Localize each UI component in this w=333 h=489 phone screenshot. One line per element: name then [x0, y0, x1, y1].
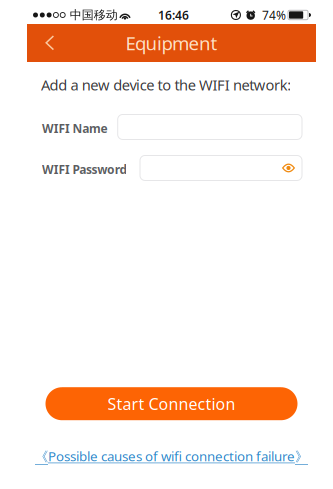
staticText: WIFI Name: [42, 120, 108, 136]
button[interactable]: 《Possible causes of wifi connection fail…: [35, 447, 308, 465]
staticText: 16:46: [158, 7, 189, 23]
button[interactable]: Start Connection: [45, 387, 297, 420]
button[interactable]: WIFI Password: [140, 155, 302, 180]
staticText: WIFI Password: [42, 161, 127, 177]
button[interactable]: WIFI Name: [118, 114, 302, 139]
staticText: 《Possible causes of wifi connection fail…: [35, 447, 308, 465]
staticText: 中国移动: [70, 8, 118, 22]
staticText: Add a new device to the WIFI network:: [41, 75, 291, 94]
staticText: Start Connection: [107, 393, 235, 414]
staticText: 74%: [262, 7, 286, 23]
staticText: Equipment: [125, 31, 217, 55]
button[interactable]: Back: [36, 24, 64, 62]
